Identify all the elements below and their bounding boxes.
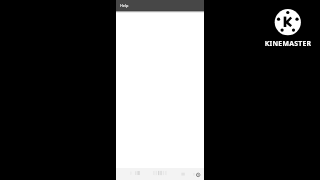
button[interactable]: Back <box>129 168 142 180</box>
button[interactable]: Recents <box>180 168 188 180</box>
button[interactable]: Help <box>116 0 204 11</box>
button[interactable]: Record <box>192 168 203 180</box>
staticText: Help <box>120 3 129 8</box>
staticText: KINEMASTER <box>258 39 318 48</box>
button[interactable]: Home <box>152 168 168 180</box>
